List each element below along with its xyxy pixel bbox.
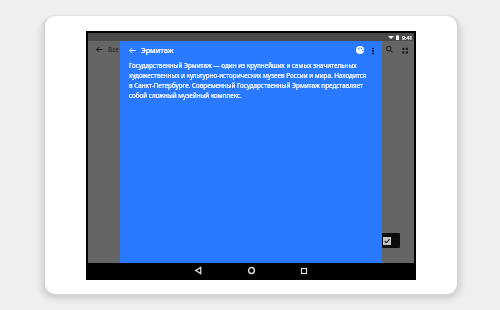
button[interactable]: Select xyxy=(382,233,400,248)
staticText: Эрмитаж xyxy=(141,45,174,55)
button[interactable]: Grid view xyxy=(402,47,408,53)
button[interactable]: Search xyxy=(386,46,393,53)
staticText: 9:41 xyxy=(402,34,413,41)
button[interactable]: Все xyxy=(88,41,120,58)
button[interactable]: Home xyxy=(243,263,259,278)
button[interactable]: Back xyxy=(190,263,206,278)
staticText: Государственный Эрмитаж — один из крупне… xyxy=(129,61,369,100)
button[interactable]: Back xyxy=(127,45,137,55)
button[interactable]: Recent apps xyxy=(296,263,312,278)
button[interactable]: Change theme xyxy=(356,46,364,54)
staticText: Все xyxy=(108,45,119,54)
button[interactable]: More options xyxy=(372,48,374,54)
